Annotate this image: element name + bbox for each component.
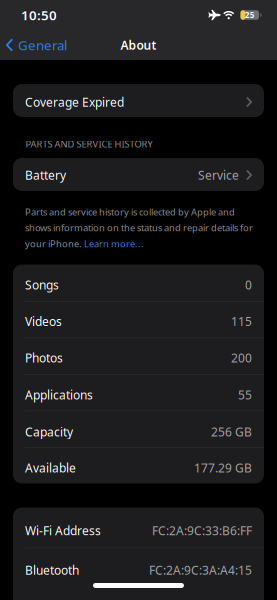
staticText: Songs	[25, 277, 59, 293]
staticText: Capacity	[25, 424, 73, 440]
staticText: Photos	[25, 350, 63, 366]
staticText: Parts and service history is collected b…	[25, 206, 235, 218]
button[interactable]: General	[0, 36, 67, 54]
staticText: About	[120, 37, 156, 53]
staticText: 256 GB	[211, 424, 252, 440]
staticText: Bluetooth	[25, 562, 79, 578]
staticText: Coverage Expired	[25, 94, 124, 110]
staticText: Available	[25, 460, 76, 476]
staticText: Service	[198, 167, 239, 183]
staticText: 200	[231, 350, 252, 366]
staticText: 55	[238, 387, 252, 403]
staticText: 25	[245, 10, 255, 20]
button[interactable]: Battery	[13, 158, 264, 191]
staticText: shows information on the status and repa…	[25, 222, 253, 234]
staticText: your iPhone.	[25, 237, 84, 250]
staticText: Learn more...	[84, 237, 144, 250]
staticText: 177.29 GB	[194, 460, 252, 476]
button[interactable]: Learn more...	[84, 237, 144, 250]
staticText: PARTS AND SERVICE HISTORY	[25, 138, 152, 150]
staticText: Applications	[25, 387, 93, 403]
staticText: FC:2A:9C:3A:A4:15	[149, 562, 252, 578]
staticText: 10:50	[21, 6, 57, 24]
staticText: General	[18, 36, 67, 54]
staticText: Wi-Fi Address	[25, 522, 101, 538]
button[interactable]: Coverage Expired	[13, 84, 264, 117]
staticText: FC:2A:9C:33:B6:FF	[152, 522, 252, 538]
staticText: Videos	[25, 313, 62, 329]
staticText: Battery	[25, 167, 66, 183]
staticText: 0	[245, 277, 252, 293]
staticText: 115	[231, 313, 252, 329]
